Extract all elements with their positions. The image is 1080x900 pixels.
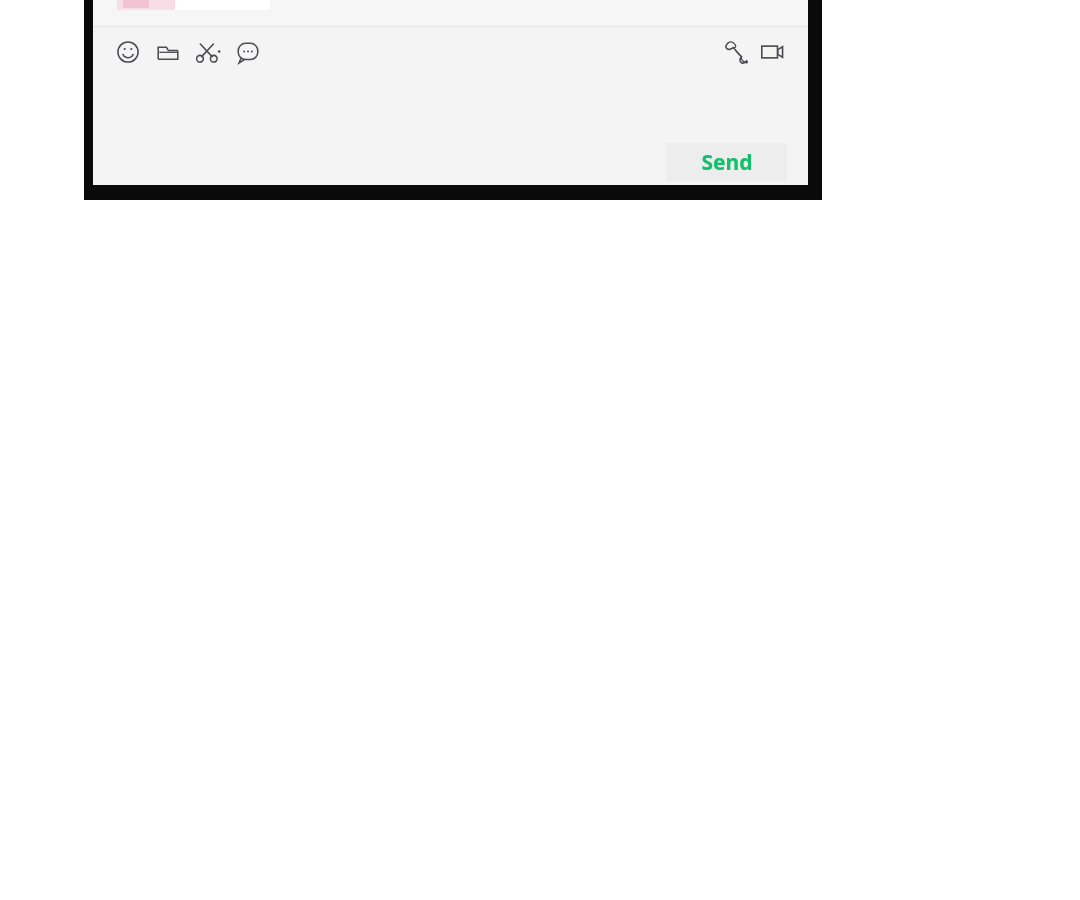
button[interactable]: Video call [759,38,787,66]
button[interactable]: Emoji [114,38,142,66]
button[interactable]: More options [234,38,262,66]
button[interactable]: Format, cut [194,38,222,66]
button[interactable]: Send [666,143,787,181]
button[interactable]: Audio call [723,38,751,66]
staticText: Send [701,148,753,177]
button[interactable]: Attach file [154,38,182,66]
